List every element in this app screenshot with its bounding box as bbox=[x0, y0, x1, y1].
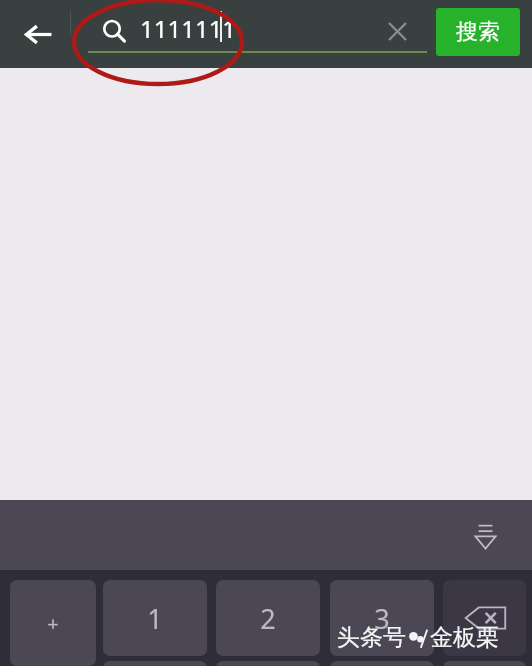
staticText: 2 bbox=[260, 600, 276, 637]
button[interactable]: 搜索 bbox=[436, 8, 520, 56]
button[interactable]: 3 bbox=[330, 580, 434, 656]
staticText: 头条号 bbox=[337, 623, 406, 652]
staticText: 1 bbox=[147, 600, 163, 637]
button[interactable]: Key bbox=[103, 661, 207, 666]
button[interactable]: Key bbox=[443, 661, 526, 666]
button[interactable]: 2 bbox=[216, 580, 320, 656]
staticText: 搜索 bbox=[456, 18, 500, 46]
staticText: 1111111 bbox=[140, 12, 237, 45]
staticText: + bbox=[47, 610, 59, 637]
button[interactable]: Key bbox=[330, 661, 434, 666]
button[interactable]: Backspace bbox=[443, 580, 526, 656]
staticText: 金板栗 bbox=[430, 623, 499, 652]
button[interactable]: Hide keyboard bbox=[458, 508, 512, 562]
button[interactable]: Back bbox=[12, 8, 64, 60]
button[interactable]: Clear text bbox=[375, 9, 420, 54]
staticText: 3 bbox=[374, 600, 390, 637]
button[interactable]: Key bbox=[216, 661, 320, 666]
button[interactable]: + bbox=[10, 580, 96, 666]
button[interactable]: 1 bbox=[103, 580, 207, 656]
